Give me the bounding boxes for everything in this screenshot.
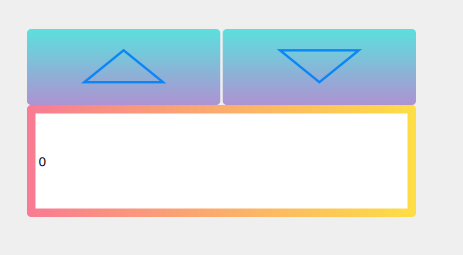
button[interactable]: Increase — [27, 29, 220, 105]
button[interactable]: 0 — [27, 105, 416, 217]
button[interactable]: Decrease — [223, 29, 416, 105]
staticText: 0 — [38, 152, 46, 170]
